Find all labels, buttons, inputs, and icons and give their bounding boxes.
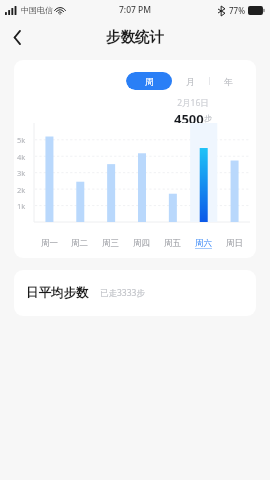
button[interactable]: 周三 [95, 238, 126, 249]
staticText: 4500 [174, 110, 204, 123]
button[interactable]: 周一 [34, 238, 64, 249]
staticText: 月 [186, 76, 195, 87]
staticText: 4k [17, 152, 26, 162]
staticText: 周二 [71, 238, 88, 249]
staticText: 3k [17, 168, 26, 178]
button[interactable]: 周 [126, 72, 172, 90]
staticText: 步 [204, 113, 212, 123]
staticText: 周一 [41, 238, 58, 249]
button[interactable]: 周日 [219, 238, 250, 249]
button[interactable]: 年 [210, 72, 246, 90]
staticText: 77% [229, 5, 245, 16]
button[interactable]: 日平均步数 [14, 270, 256, 316]
staticText: 周日 [226, 238, 243, 249]
staticText: 7:07 PM [119, 4, 152, 16]
staticText: 周三 [102, 238, 119, 249]
staticText: 2k [17, 185, 26, 195]
staticText: 日平均步数 [26, 285, 89, 301]
staticText: 周 [145, 76, 154, 87]
staticText: 年 [224, 76, 233, 87]
staticText: 已走3333步 [100, 287, 145, 299]
button[interactable]: 月 [172, 72, 209, 90]
staticText: 周六 [195, 238, 212, 249]
staticText: 1k [17, 201, 26, 211]
button[interactable]: 周五 [157, 238, 188, 249]
staticText: 周五 [164, 238, 181, 249]
staticText: 周四 [133, 238, 150, 249]
staticText: 2月16日 [177, 97, 209, 109]
staticText: 中国电信 [21, 5, 53, 15]
button[interactable]: 周二 [64, 238, 95, 249]
staticText: 步数统计 [106, 28, 164, 46]
staticText: 5k [17, 135, 26, 145]
button[interactable]: 周六 [188, 238, 219, 249]
button[interactable]: 周四 [126, 238, 157, 249]
button[interactable]: Back [0, 20, 34, 54]
